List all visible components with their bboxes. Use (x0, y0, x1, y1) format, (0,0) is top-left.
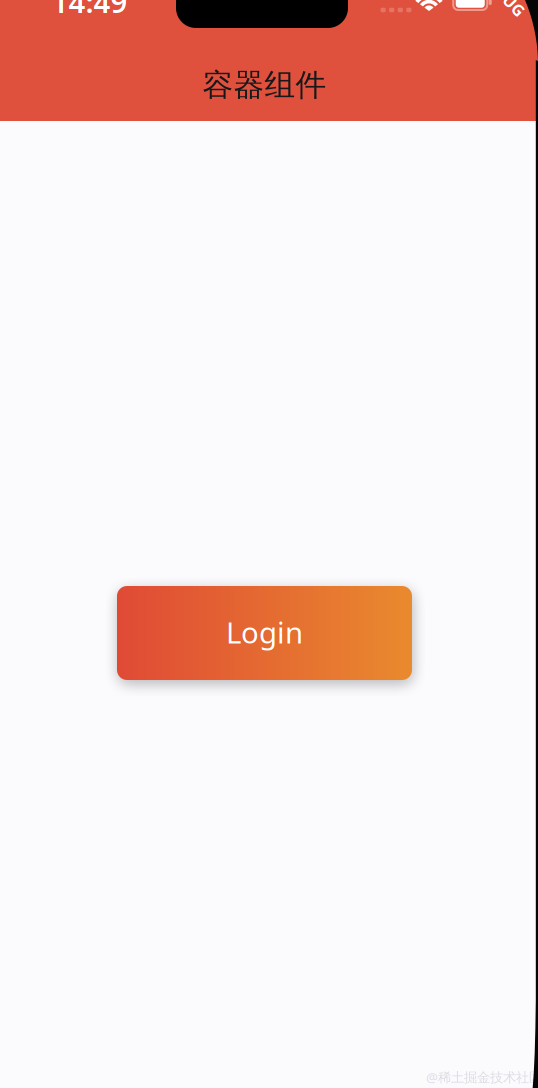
staticText: 14:49 (51, 0, 127, 21)
staticText: Login (226, 612, 303, 651)
staticText: DUG (492, 0, 528, 12)
button[interactable]: Login (117, 586, 412, 680)
staticText: @稀土掘金技术社区 (426, 1068, 538, 1086)
staticText: 容器组件 (202, 66, 326, 104)
